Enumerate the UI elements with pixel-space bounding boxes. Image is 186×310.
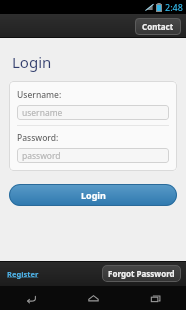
button[interactable]: username <box>17 105 169 120</box>
staticText: Login <box>12 52 52 72</box>
staticText: Contact <box>142 21 174 32</box>
staticText: 2:48 <box>165 1 183 13</box>
button[interactable]: Forgot Password <box>102 265 181 282</box>
staticText: password <box>22 150 61 162</box>
button[interactable]: Back <box>0 286 62 310</box>
staticText: username <box>22 107 63 119</box>
button[interactable]: Login <box>9 184 177 206</box>
button[interactable]: Recents <box>124 286 186 310</box>
staticText: Username: <box>17 89 62 101</box>
button[interactable]: Register <box>4 266 42 282</box>
button[interactable]: Contact <box>135 18 181 35</box>
button[interactable]: password <box>17 148 169 163</box>
staticText: Login <box>81 189 106 201</box>
staticText: Forgot Password <box>108 268 175 279</box>
staticText: Password: <box>17 132 59 144</box>
staticText: Register <box>7 269 39 279</box>
button[interactable]: Home <box>62 286 124 310</box>
